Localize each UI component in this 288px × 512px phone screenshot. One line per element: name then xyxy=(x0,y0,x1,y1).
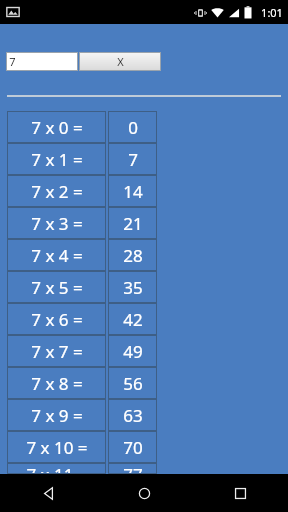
button[interactable]: X xyxy=(79,52,161,71)
staticText: 7 x 6 = xyxy=(31,308,83,331)
staticText: 7 x 8 = xyxy=(31,372,83,395)
staticText: 0 xyxy=(128,116,138,139)
staticText: 1:01 xyxy=(261,5,283,20)
staticText: 63 xyxy=(123,404,143,427)
button[interactable]: 7 x 1 = xyxy=(7,143,157,175)
staticText: 7 x 0 = xyxy=(31,116,83,139)
staticText: 7 x 7 = xyxy=(31,340,83,363)
button[interactable]: 7 x 3 = xyxy=(7,207,157,239)
button[interactable]: 7 x 6 = xyxy=(7,303,157,335)
staticText: 42 xyxy=(123,308,143,331)
staticText: 70 xyxy=(123,436,143,459)
staticText: 7 x 1 = xyxy=(31,148,83,171)
staticText: 7 x 4 = xyxy=(31,244,83,267)
staticText: 7 x 10 = xyxy=(26,436,88,459)
staticText: 7 x 2 = xyxy=(31,180,83,203)
staticText: 7 x 11 = xyxy=(26,463,88,474)
button[interactable]: Home xyxy=(96,474,192,512)
staticText: 14 xyxy=(123,180,143,203)
staticText: 28 xyxy=(123,244,143,267)
button[interactable]: Recent apps xyxy=(192,474,288,512)
button[interactable]: 7 x 9 = xyxy=(7,399,157,431)
button[interactable]: 7 xyxy=(6,52,78,71)
button[interactable]: Back xyxy=(0,474,96,512)
staticText: 35 xyxy=(123,276,143,299)
staticText: 7 xyxy=(9,54,16,69)
button[interactable]: 7 x 7 = xyxy=(7,335,157,367)
button[interactable]: 7 x 10 = xyxy=(7,431,157,463)
staticText: 7 x 9 = xyxy=(31,404,83,427)
button[interactable]: 7 x 2 = xyxy=(7,175,157,207)
button[interactable]: 7 x 4 = xyxy=(7,239,157,271)
staticText: 7 x 5 = xyxy=(31,276,83,299)
staticText: 7 x 3 = xyxy=(31,212,83,235)
staticText: X xyxy=(117,54,124,69)
staticText: 7 xyxy=(128,148,138,171)
staticText: 56 xyxy=(123,372,143,395)
staticText: 77 xyxy=(123,463,143,474)
button[interactable]: 7 x 8 = xyxy=(7,367,157,399)
button[interactable]: 7 x 5 = xyxy=(7,271,157,303)
button[interactable]: 7 x 0 = xyxy=(7,111,157,143)
button[interactable]: 7 x 11 = xyxy=(7,463,157,474)
staticText: 49 xyxy=(123,340,143,363)
staticText: 21 xyxy=(123,212,143,235)
